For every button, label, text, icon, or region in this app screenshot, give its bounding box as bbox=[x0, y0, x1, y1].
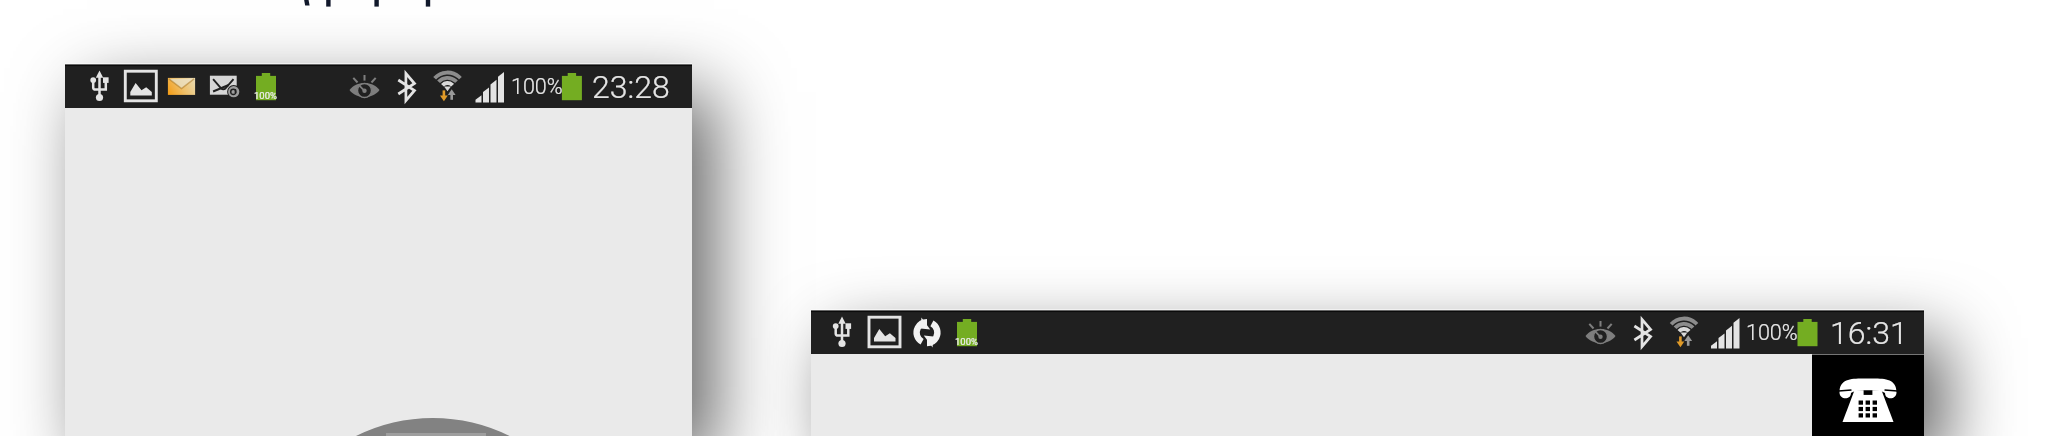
staticText: 23:28 bbox=[592, 68, 670, 106]
button[interactable]: Status bar 23:28 bbox=[65, 64, 692, 108]
staticText: 16:31 bbox=[1830, 314, 1908, 352]
button[interactable]: Screen preview one bbox=[65, 108, 692, 436]
staticText: 100% bbox=[511, 74, 563, 99]
button[interactable]: Phone bbox=[1812, 354, 1924, 436]
staticText: 100% bbox=[955, 336, 978, 347]
staticText: 100% bbox=[1746, 320, 1798, 345]
staticText: 100% bbox=[254, 90, 277, 101]
button[interactable]: Status bar 16:31 bbox=[811, 310, 1924, 354]
